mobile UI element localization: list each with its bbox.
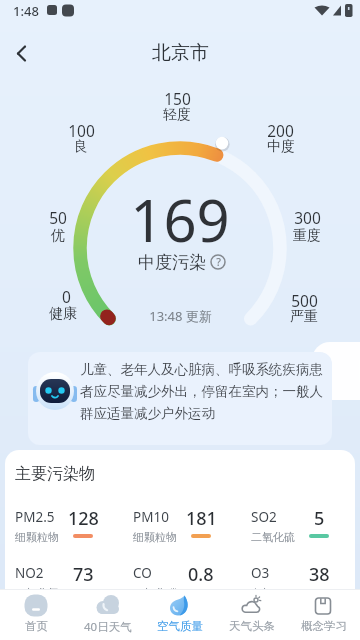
staticText: 200 [267,120,294,138]
staticText: O3 [251,564,270,582]
staticText: PM10 [133,508,169,526]
staticText: 重度 [293,227,321,245]
button[interactable]: 首页 [0,589,72,640]
staticText: 500 [291,290,318,308]
staticText: 优 [51,227,65,245]
staticText: 0.8 [188,562,214,587]
staticText: 5 [314,506,325,531]
staticText: 首页 [25,619,48,633]
button[interactable]: O3 [251,561,360,615]
staticText: 一氧化碳 [133,586,177,600]
button[interactable]: PM10 [133,505,251,559]
staticText: NO2 [15,564,44,582]
staticText: 轻度 [163,106,191,124]
staticText: 主要污染物 [15,464,95,484]
staticText: 181 [186,506,217,531]
staticText: SO2 [251,508,277,526]
staticText: 严重 [290,308,318,326]
staticText: 良 [74,138,88,156]
staticText: 二氧化硫 [251,530,295,544]
staticText: 中度污染 [138,252,206,273]
staticText: 300 [294,207,321,225]
staticText: 100 [68,120,95,138]
button[interactable]: SO2 [251,505,360,559]
staticText: 73 [73,562,94,587]
staticText: 50 [49,207,67,225]
button[interactable] [207,251,229,273]
button[interactable]: 40日天气 [72,589,144,640]
staticText: CO [133,564,152,582]
staticText: 38 [309,562,330,587]
staticText: ? [216,255,221,269]
staticText: 128 [68,506,99,531]
staticText: 细颗粒物 [133,530,177,544]
button[interactable]: 概念学习 [288,589,360,640]
button[interactable]: CO [133,561,251,615]
staticText: 二氧化氮 [15,586,59,600]
staticText: 天气头条 [229,619,275,633]
staticText: 儿童、老年人及心脏病、呼吸系统疾病患 者应尽量减少外出，停留在室内；一般人 群应… [80,361,328,422]
staticText: 中度 [267,138,295,156]
button[interactable]: NO2 [15,561,133,615]
staticText: 40日天气 [84,619,132,635]
staticText: 空气质量 [157,619,203,633]
staticText: 0 [62,286,71,304]
staticText: 臭氧 [251,586,273,600]
staticText: 北京市 [152,41,209,65]
button[interactable]: 天气头条 [216,589,288,640]
staticText: 169 [130,180,230,259]
staticText: 细颗粒物 [15,530,59,544]
button[interactable]: 空气质量 [144,589,216,640]
staticText: 1:48 [13,2,39,20]
staticText: 150 [164,88,191,106]
button[interactable]: PM2.5 [15,505,133,559]
button[interactable] [6,37,42,69]
staticText: PM2.5 [15,508,55,526]
staticText: 13:48 更新 [149,307,212,325]
button[interactable]: 儿童、老年人及心脏病、呼吸系统疾病患 者应尽量减少外出，停留在室内；一般人 群应… [28,352,332,445]
staticText: 概念学习 [301,619,347,633]
staticText: 健康 [49,305,77,323]
